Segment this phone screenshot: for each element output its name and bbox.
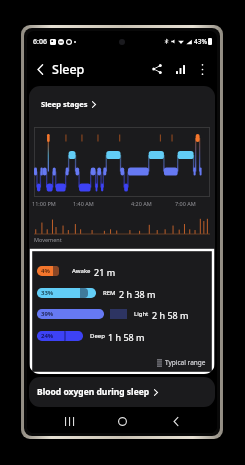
button[interactable]: 4% [37,266,215,276]
staticText: 2 h 58 m [152,309,189,319]
staticText: 39% [41,310,54,318]
staticText: 4% [41,267,50,275]
button[interactable]: 24% [37,331,215,341]
staticText: 1 h 58 m [108,331,145,341]
button[interactable]: 33% [37,288,215,298]
button[interactable]: 39% [37,309,215,319]
staticText: 1:40 AM [73,200,94,207]
button[interactable]: Blood oxygen during sleep [29,377,215,407]
staticText: 7:00 AM [175,200,196,207]
staticText: Light [134,310,149,318]
button[interactable]: More options [192,59,212,79]
staticText: 4:20 AM [131,200,152,207]
staticText: Deep [90,332,105,340]
button[interactable]: Back [32,58,48,80]
button[interactable]: Statistics [170,59,190,79]
staticText: REM [103,289,116,297]
button[interactable]: Share [147,59,167,79]
staticText: Sleep [52,61,85,78]
staticText: 2 h 38 m [119,288,156,298]
staticText: Movement [34,236,62,243]
button[interactable]: Sleep stages [41,96,96,112]
staticText: 11:00 PM [32,200,56,207]
button[interactable]: Back [164,409,188,433]
staticText: Awake [72,267,91,275]
staticText: 33% [41,289,54,297]
button[interactable]: Home [110,409,134,433]
staticText: 43% [194,37,207,46]
button[interactable]: Recent apps [57,409,81,433]
staticText: Blood oxygen during sleep [37,386,150,398]
staticText: 24% [41,332,54,340]
staticText: 6:06 [33,37,47,47]
staticText: Sleep stages [41,99,88,109]
staticText: Typical range [165,358,206,367]
staticText: 21 m [94,266,116,276]
